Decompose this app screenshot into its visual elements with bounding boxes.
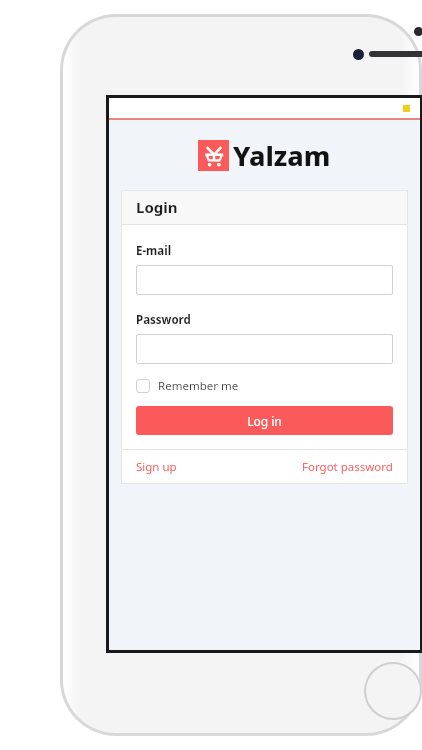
staticText: Password xyxy=(136,312,191,328)
staticText: Forgot password xyxy=(302,459,393,475)
staticText: Yalzam xyxy=(233,137,331,174)
button[interactable]: Sign up xyxy=(136,459,177,475)
button[interactable] xyxy=(136,265,393,295)
staticText: Login xyxy=(136,197,178,217)
staticText: E-mail xyxy=(136,243,172,259)
button[interactable] xyxy=(136,334,393,364)
staticText: Remember me xyxy=(158,378,239,394)
button[interactable]: Forgot password xyxy=(302,459,393,475)
button[interactable]: Log in xyxy=(136,406,393,435)
other: Home xyxy=(364,662,422,720)
button[interactable]: Remember me xyxy=(136,378,239,394)
staticText: Sign up xyxy=(136,459,177,475)
staticText: Log in xyxy=(247,413,282,429)
